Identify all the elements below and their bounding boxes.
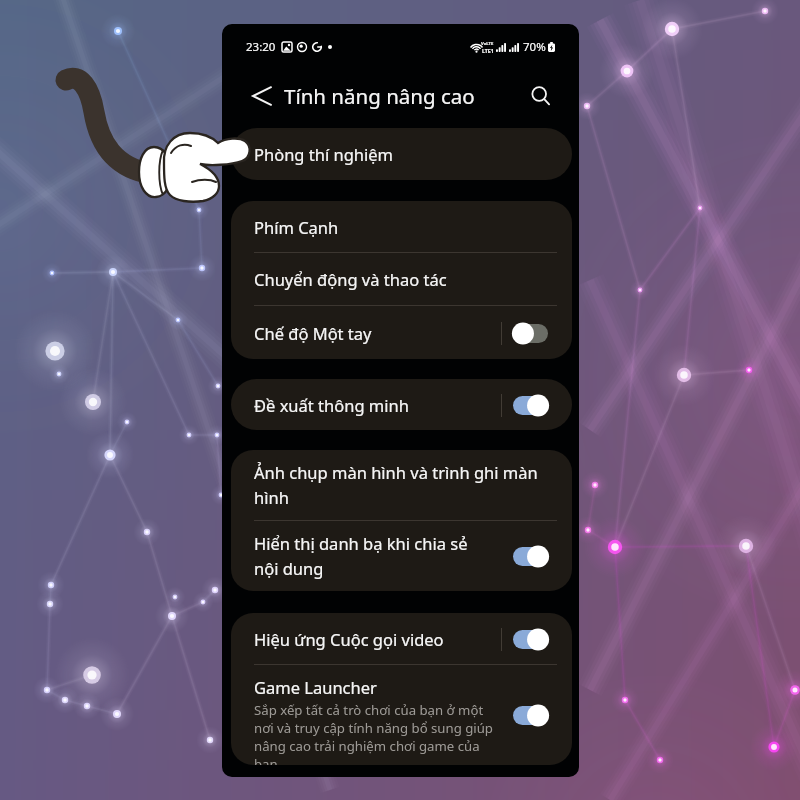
staticText: Phòng thí nghiệm (254, 143, 394, 165)
button[interactable]: Toggle (513, 630, 548, 649)
button[interactable]: Toggle (513, 547, 548, 566)
staticText: 23:20 (246, 39, 276, 55)
staticText: Hiển thị danh bạ khi chia sẻ nội dung (254, 532, 487, 580)
button[interactable]: Search (532, 87, 550, 105)
button[interactable]: Toggle (513, 324, 548, 343)
button[interactable]: Phòng thí nghiệm (231, 128, 572, 180)
staticText: LTE1 (482, 47, 494, 54)
button[interactable]: Đề xuất thông minh (231, 379, 572, 430)
staticText: 70% (523, 39, 546, 55)
staticText: Chuyển động và thao tác (254, 268, 447, 290)
button[interactable]: Phím Cạnh (231, 201, 572, 252)
staticText: Hiệu ứng Cuộc gọi video (254, 628, 444, 650)
staticText: VoLTE (481, 41, 494, 47)
button[interactable]: Chế độ Một tay (231, 306, 572, 359)
staticText: Game Launcher (254, 676, 377, 698)
button[interactable]: Back (252, 86, 272, 106)
button[interactable]: Toggle (513, 706, 548, 725)
button[interactable]: Ảnh chụp màn hình và trình ghi màn hình (231, 450, 572, 520)
button[interactable]: Hiển thị danh bạ khi chia sẻ nội dung (231, 521, 572, 591)
staticText: Sắp xếp tất cả trò chơi của bạn ở một nơ… (254, 701, 494, 765)
staticText: Phím Cạnh (254, 216, 339, 238)
button[interactable]: Game Launcher (231, 665, 572, 765)
button[interactable]: Toggle (513, 396, 548, 415)
staticText: Đề xuất thông minh (254, 394, 409, 416)
staticText: Chế độ Một tay (254, 322, 372, 344)
button[interactable]: Chuyển động và thao tác (231, 253, 572, 305)
staticText: Ảnh chụp màn hình và trình ghi màn hình (254, 461, 548, 509)
staticText: Tính năng nâng cao (284, 82, 475, 110)
button[interactable]: Hiệu ứng Cuộc gọi video (231, 613, 572, 664)
